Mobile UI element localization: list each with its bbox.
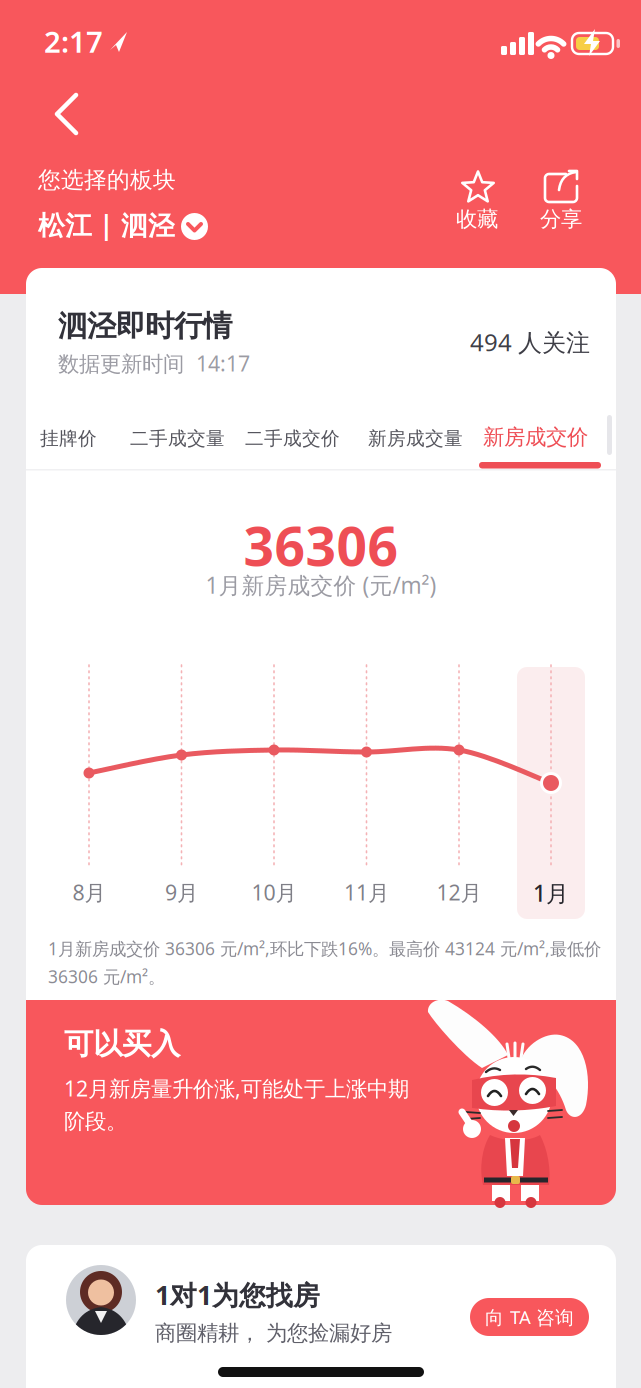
staticText: 12月新房量升价涨,可能处于上涨中期 阶段。 [64,1074,409,1134]
staticText: 10月 [251,878,296,906]
staticText: 二手成交价 [245,427,340,450]
button[interactable]: 新房成交价 [479,424,603,469]
staticText: 2:17 [44,22,103,61]
staticText: 向 TA 咨询 [485,1305,574,1329]
staticText: 11月 [344,878,389,906]
button[interactable]: 松江 | 泗泾 [38,202,210,244]
button[interactable]: 收藏 [452,168,504,234]
button[interactable]: Back [52,88,86,140]
staticText: 泗泾即时行情 [58,308,232,344]
staticText: 可以买入 [64,1026,180,1062]
staticText: 1月 [533,878,569,908]
staticText: 您选择的板块 [38,166,176,194]
staticText: 36306 [243,510,398,581]
staticText: 分享 [540,206,582,232]
staticText: 494 人关注 [470,326,590,358]
staticText: 商圈精耕， 为您捡漏好房 [155,1320,392,1346]
button[interactable]: 二手成交量 [130,427,225,450]
staticText: 1月新房成交价 36306 元/m²,环比下跌16%。最高价 43124 元/m… [48,937,601,960]
staticText: 新房成交量 [368,427,463,450]
staticText: 数据更新时间 14:17 [58,349,250,377]
staticText: 新房成交价 [483,424,588,450]
button[interactable]: 新房成交量 [368,427,463,450]
staticText: 松江 | 泗泾 [38,207,175,242]
button[interactable]: 向 TA 咨询 [470,1298,589,1336]
staticText: 收藏 [456,206,498,232]
staticText: 1月新房成交价 (元/m²) [205,570,436,600]
staticText: 9月 [165,878,198,906]
staticText: 1对1为您找房 [155,1277,320,1312]
staticText: 8月 [72,878,105,906]
button[interactable]: 1对1为您找房 [26,1245,616,1388]
staticText: 二手成交量 [130,427,225,450]
staticText: 36306 元/m²。 [48,965,165,988]
button[interactable]: 挂牌价 [40,427,97,450]
staticText: 挂牌价 [40,427,97,450]
button[interactable]: 二手成交价 [245,427,340,450]
button[interactable]: 分享 [538,168,588,234]
staticText: 12月 [436,878,481,906]
